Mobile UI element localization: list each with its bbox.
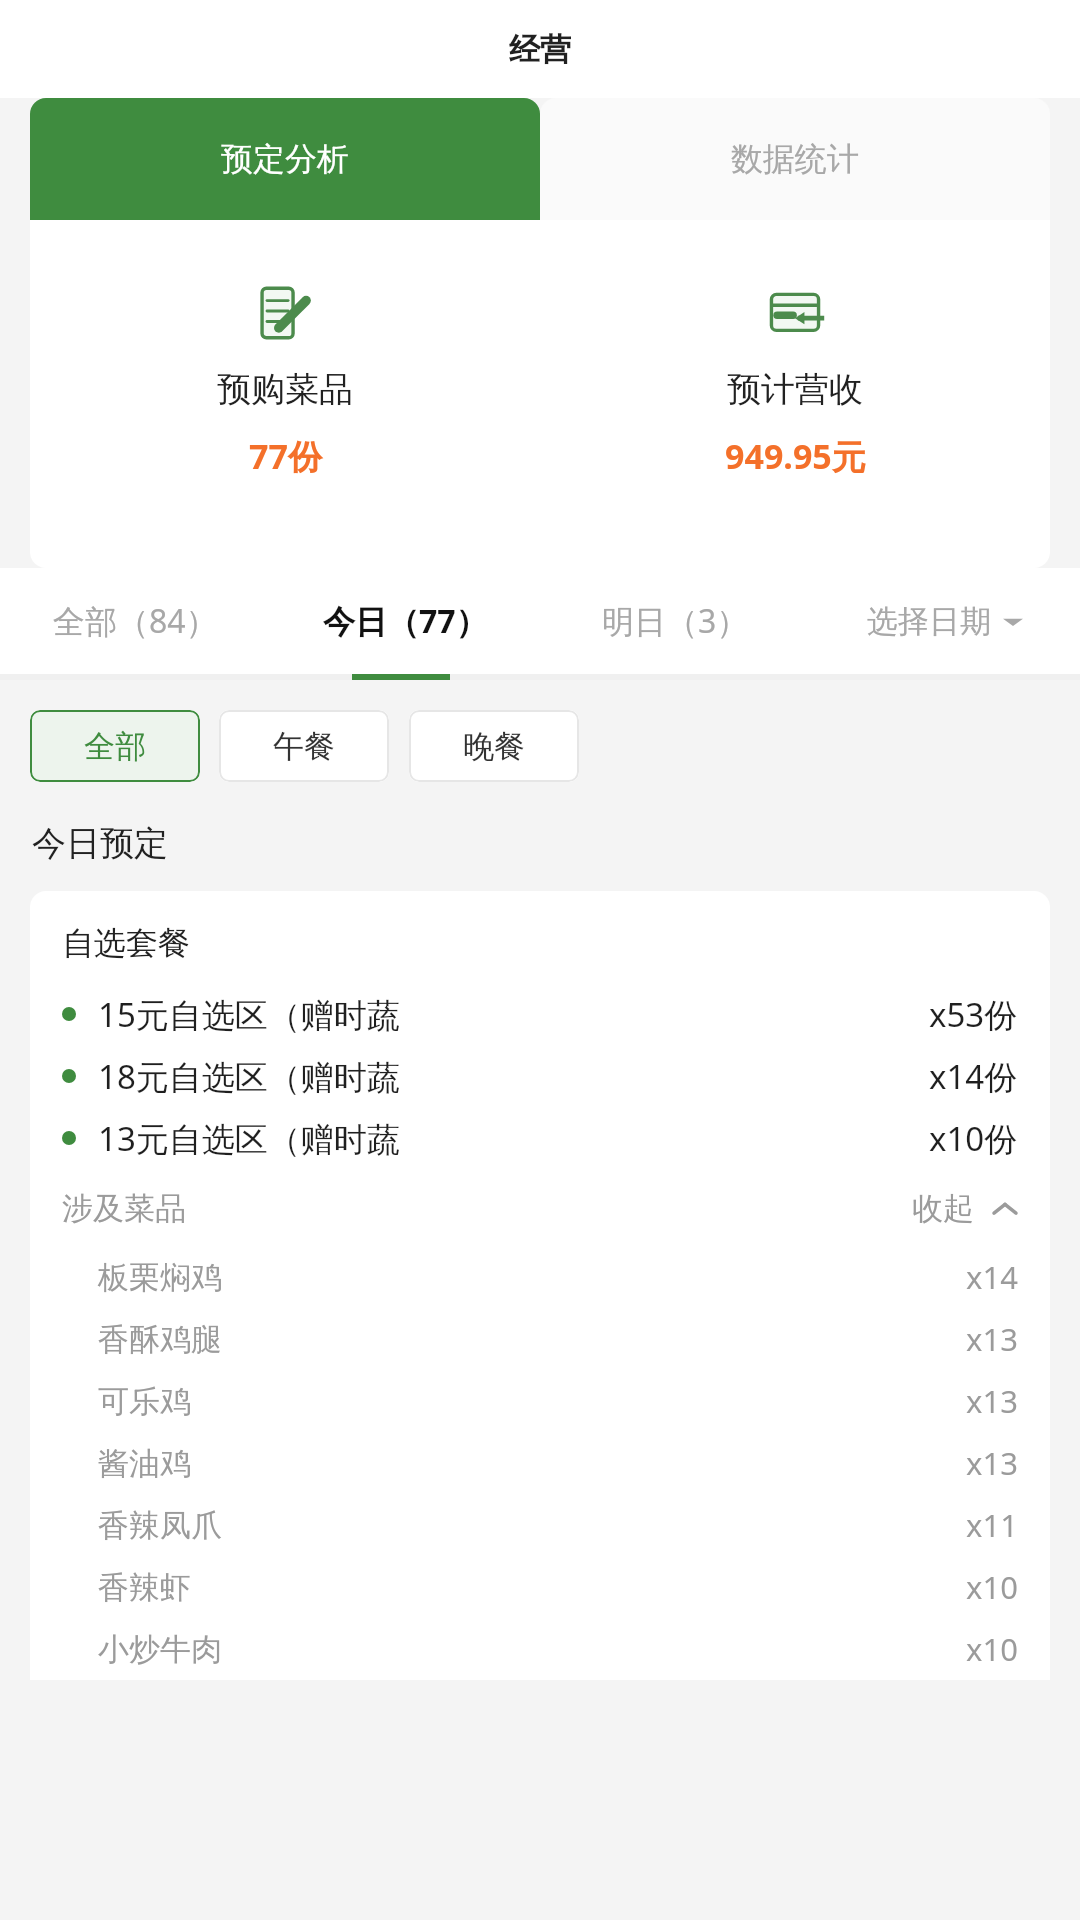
- button[interactable]: 板栗焖鸡: [98, 1246, 1018, 1308]
- staticText: x13: [966, 1318, 1018, 1360]
- staticText: 预定分析: [221, 139, 349, 179]
- button[interactable]: 酱油鸡: [98, 1432, 1018, 1494]
- button[interactable]: 全部（84）: [0, 568, 270, 674]
- button[interactable]: 预定分析: [30, 98, 540, 220]
- staticText: 香辣凤爪: [98, 1506, 222, 1545]
- other: 预购菜品: [254, 282, 316, 344]
- staticText: 今日（77）: [323, 599, 488, 643]
- staticText: 午餐: [273, 727, 335, 766]
- staticText: 949.95元: [725, 433, 866, 479]
- button[interactable]: 香酥鸡腿: [98, 1308, 1018, 1370]
- button[interactable]: 香辣虾: [98, 1556, 1018, 1618]
- staticText: 今日预定: [32, 822, 168, 865]
- button[interactable]: 选择日期: [810, 568, 1080, 674]
- button[interactable]: 13元自选区（赠时蔬: [62, 1107, 1018, 1169]
- staticText: x53份: [929, 992, 1018, 1037]
- button[interactable]: 午餐: [219, 710, 389, 782]
- staticText: x11: [966, 1504, 1018, 1546]
- staticText: 收起: [912, 1189, 974, 1228]
- staticText: 香酥鸡腿: [98, 1320, 222, 1359]
- staticText: 全部（84）: [53, 599, 218, 643]
- button[interactable]: 香辣凤爪: [98, 1494, 1018, 1556]
- staticText: 自选套餐: [62, 923, 190, 963]
- other: 预计营收: [764, 282, 826, 344]
- button[interactable]: 小炒牛肉: [98, 1618, 1018, 1680]
- staticText: 明日（3）: [602, 599, 749, 643]
- button[interactable]: 18元自选区（赠时蔬: [62, 1045, 1018, 1107]
- staticText: 涉及菜品: [62, 1189, 186, 1228]
- staticText: 预计营收: [727, 368, 863, 411]
- staticText: x10: [966, 1566, 1018, 1608]
- staticText: 经营: [509, 30, 571, 69]
- staticText: 预购菜品: [217, 368, 353, 411]
- staticText: 77份: [249, 433, 322, 479]
- button[interactable]: 涉及菜品: [62, 1185, 1018, 1232]
- button[interactable]: 预计营收: [540, 220, 1050, 568]
- staticText: x13: [966, 1380, 1018, 1422]
- button[interactable]: 数据统计: [540, 98, 1050, 220]
- staticText: 香辣虾: [98, 1568, 191, 1607]
- staticText: 13元自选区（赠时蔬: [98, 1116, 400, 1161]
- staticText: x14份: [929, 1054, 1018, 1099]
- staticText: 15元自选区（赠时蔬: [98, 992, 400, 1037]
- button[interactable]: 明日（3）: [540, 568, 810, 674]
- button[interactable]: 全部: [30, 710, 200, 782]
- staticText: 全部: [84, 727, 146, 766]
- staticText: x13: [966, 1442, 1018, 1484]
- button[interactable]: 今日（77）: [270, 568, 540, 674]
- staticText: 18元自选区（赠时蔬: [98, 1054, 400, 1099]
- staticText: x14: [966, 1256, 1018, 1298]
- staticText: 选择日期: [867, 602, 991, 641]
- staticText: x10份: [929, 1116, 1018, 1161]
- button[interactable]: 预购菜品: [30, 220, 540, 568]
- staticText: 酱油鸡: [98, 1444, 191, 1483]
- staticText: 晚餐: [463, 727, 525, 766]
- staticText: 数据统计: [731, 139, 859, 179]
- button[interactable]: 晚餐: [409, 710, 579, 782]
- staticText: 小炒牛肉: [98, 1630, 222, 1669]
- staticText: 板栗焖鸡: [98, 1258, 222, 1297]
- staticText: x10: [966, 1628, 1018, 1670]
- staticText: 可乐鸡: [98, 1382, 191, 1421]
- button[interactable]: 15元自选区（赠时蔬: [62, 983, 1018, 1045]
- button[interactable]: 可乐鸡: [98, 1370, 1018, 1432]
